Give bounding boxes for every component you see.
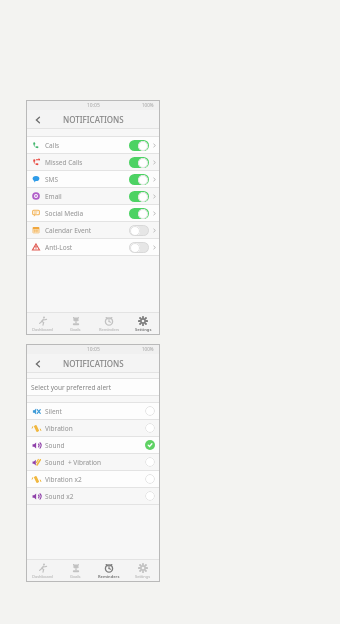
button[interactable]: Vibration — [26, 420, 160, 436]
button[interactable]: Goals — [59, 313, 92, 335]
button[interactable]: Settings — [126, 313, 160, 335]
button[interactable]: Email — [26, 188, 160, 204]
staticText: Calls — [45, 141, 60, 150]
staticText: 100% — [142, 346, 154, 352]
button[interactable]: Dashboard — [26, 313, 59, 335]
staticText: Select your preferred alert — [31, 383, 112, 392]
staticText: Missed Calls — [45, 158, 83, 167]
staticText: 10:05 — [87, 346, 100, 353]
staticText: Settings — [135, 574, 151, 579]
button[interactable]: Anti-Lost — [26, 239, 160, 255]
staticText: Dashboard — [32, 574, 53, 579]
button[interactable]: Settings — [126, 560, 160, 582]
staticText: Silent — [45, 407, 62, 416]
staticText: 100% — [142, 102, 154, 108]
button[interactable]: Toggle — [129, 140, 149, 151]
button[interactable]: Toggle — [129, 242, 149, 253]
staticText: Sound x2 — [45, 492, 74, 501]
button[interactable]: Dashboard — [26, 560, 59, 582]
button[interactable]: Sound x2 — [26, 488, 160, 504]
staticText: Settings — [135, 327, 152, 332]
staticText: Reminders — [99, 327, 120, 332]
button[interactable]: Silent — [26, 403, 160, 419]
staticText: Email — [45, 192, 62, 201]
staticText: NOTIFICATIONS — [63, 114, 124, 125]
button[interactable]: Sound + Vibration — [26, 454, 160, 470]
button[interactable]: Calls — [26, 137, 160, 153]
staticText: Anti-Lost — [45, 243, 73, 252]
staticText: Sound + Vibration — [45, 458, 102, 467]
staticText: SMS — [45, 175, 59, 184]
button[interactable]: Toggle — [129, 174, 149, 185]
button[interactable]: Reminders — [92, 560, 126, 582]
button[interactable]: Toggle — [129, 157, 149, 168]
staticText: 10:05 — [87, 102, 100, 109]
button[interactable]: Social Media — [26, 205, 160, 221]
button[interactable]: Toggle — [129, 208, 149, 219]
button[interactable]: Missed Calls — [26, 154, 160, 170]
staticText: Sound — [45, 441, 65, 450]
staticText: Vibration x2 — [45, 475, 82, 484]
button[interactable]: Back — [31, 357, 45, 371]
staticText: Goals — [70, 327, 81, 332]
button[interactable]: Back — [31, 113, 45, 127]
button[interactable]: Reminders — [92, 313, 126, 335]
button[interactable]: SMS — [26, 171, 160, 187]
button[interactable]: Sound — [26, 437, 160, 453]
button[interactable]: Vibration x2 — [26, 471, 160, 487]
staticText: Goals — [70, 574, 81, 579]
staticText: Calendar Event — [45, 226, 92, 235]
staticText: NOTIFICATIONS — [63, 358, 124, 369]
staticText: Social Media — [45, 209, 84, 218]
button[interactable]: Toggle — [129, 225, 149, 236]
button[interactable]: Toggle — [129, 191, 149, 202]
staticText: Reminders — [98, 574, 120, 579]
button[interactable]: Calendar Event — [26, 222, 160, 238]
button[interactable]: Goals — [59, 560, 92, 582]
staticText: Vibration — [45, 424, 73, 433]
staticText: Dashboard — [32, 327, 53, 332]
